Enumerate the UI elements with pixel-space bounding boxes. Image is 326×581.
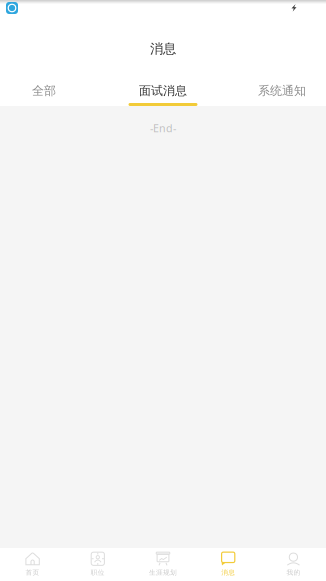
button[interactable]: 生涯规划 [130, 548, 196, 581]
button[interactable]: 系统通知 [222, 64, 326, 106]
staticText: 首页 [26, 568, 40, 577]
staticText: 消息 [221, 568, 235, 577]
button[interactable]: 我的 [261, 548, 326, 581]
button[interactable]: 面试消息 [103, 64, 222, 106]
staticText: -End- [150, 121, 176, 135]
button[interactable]: 职位 [65, 548, 130, 581]
staticText: 职位 [91, 568, 105, 577]
staticText: 消息 [150, 41, 176, 57]
button[interactable]: 消息 [196, 548, 261, 581]
button[interactable]: 全部 [0, 64, 103, 106]
staticText: 生涯规划 [149, 568, 177, 577]
staticText: 我的 [286, 568, 300, 577]
staticText: 面试消息 [139, 83, 187, 98]
button[interactable]: 首页 [0, 548, 65, 581]
staticText: 系统通知 [258, 83, 306, 98]
staticText: 全部 [32, 83, 56, 98]
